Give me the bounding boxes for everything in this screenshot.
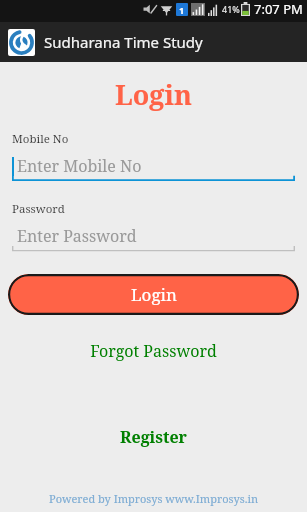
button[interactable]: Enter Mobile No: [12, 150, 295, 182]
staticText: 41%: [222, 3, 240, 15]
staticText: 1: [179, 4, 185, 16]
staticText: Login: [131, 283, 177, 306]
staticText: Enter Password: [17, 225, 137, 247]
staticText: Sudharana Time Study: [44, 32, 203, 52]
button[interactable]: Register: [0, 426, 307, 448]
button[interactable]: Login: [8, 274, 299, 315]
staticText: Enter Mobile No: [17, 155, 142, 177]
staticText: 7:07 PM: [254, 0, 303, 18]
staticText: Register: [120, 426, 187, 448]
button[interactable]: Forgot Password: [0, 340, 307, 362]
staticText: Login: [0, 76, 307, 113]
staticText: Mobile No: [12, 131, 69, 147]
staticText: Password: [12, 201, 65, 217]
button[interactable]: Enter Password: [12, 220, 295, 252]
staticText: Forgot Password: [90, 340, 217, 362]
staticText: Powered by Improsys www.Improsys.in: [0, 491, 307, 506]
